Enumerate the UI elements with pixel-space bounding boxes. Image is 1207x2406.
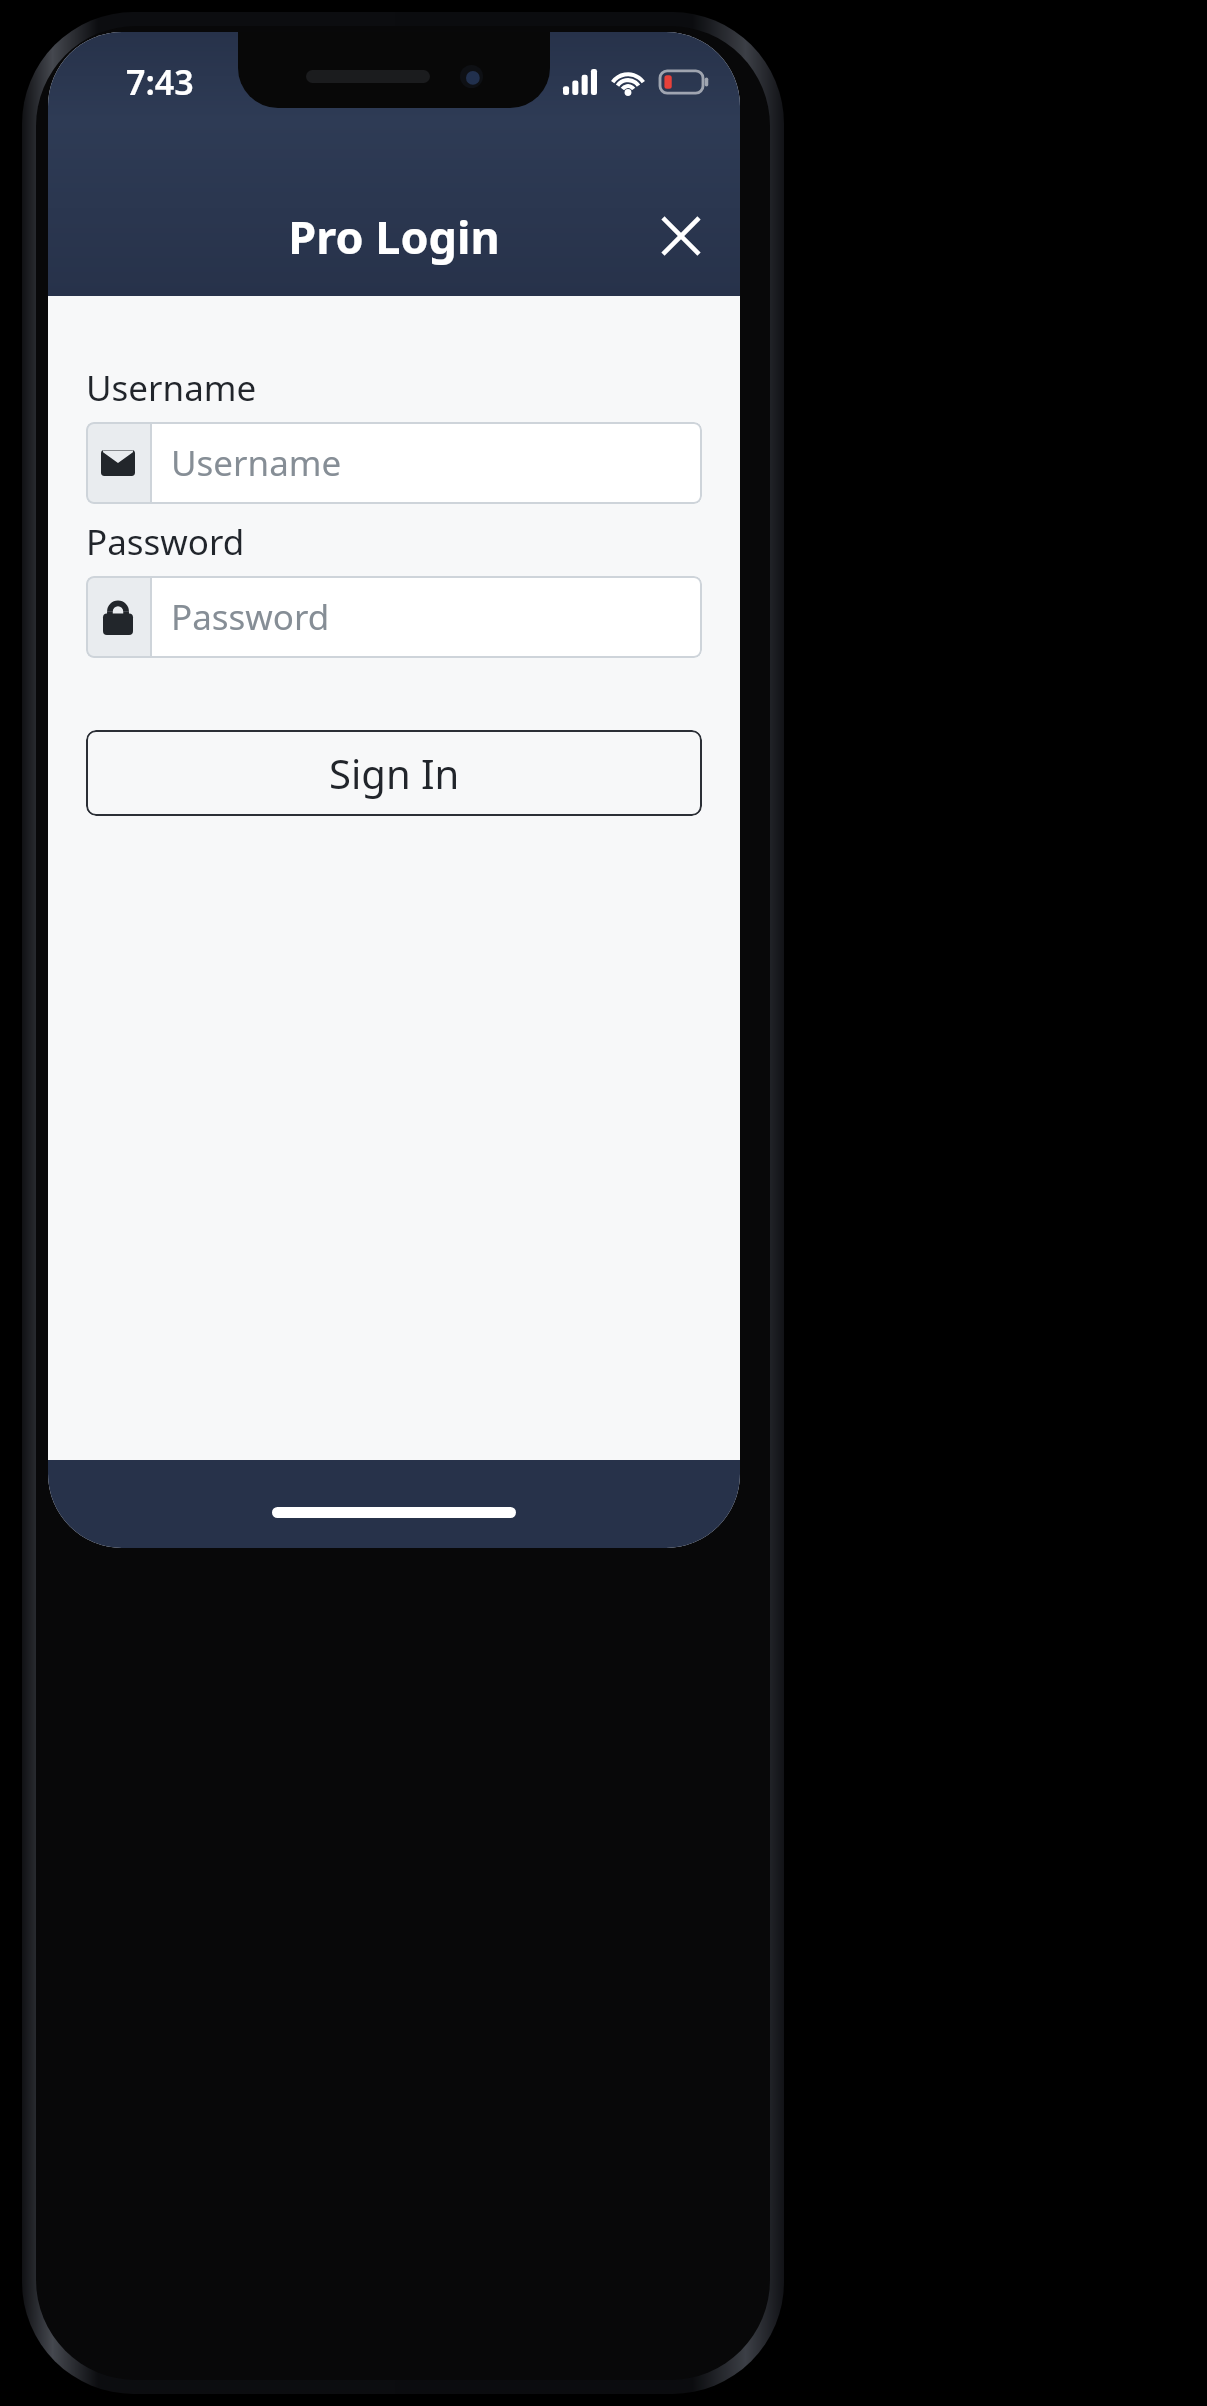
staticText: Sign In (329, 746, 460, 800)
button[interactable]: Sign In (86, 730, 702, 816)
button[interactable]: Username (86, 422, 702, 504)
staticText: Pro Login (288, 206, 500, 267)
staticText: 7:43 (126, 59, 194, 105)
staticText: Password (171, 593, 330, 641)
staticText: Username (171, 439, 342, 487)
button[interactable]: Password (86, 576, 702, 658)
button[interactable]: Close (640, 195, 722, 277)
staticText: Password (86, 518, 245, 566)
staticText: Username (86, 364, 257, 412)
